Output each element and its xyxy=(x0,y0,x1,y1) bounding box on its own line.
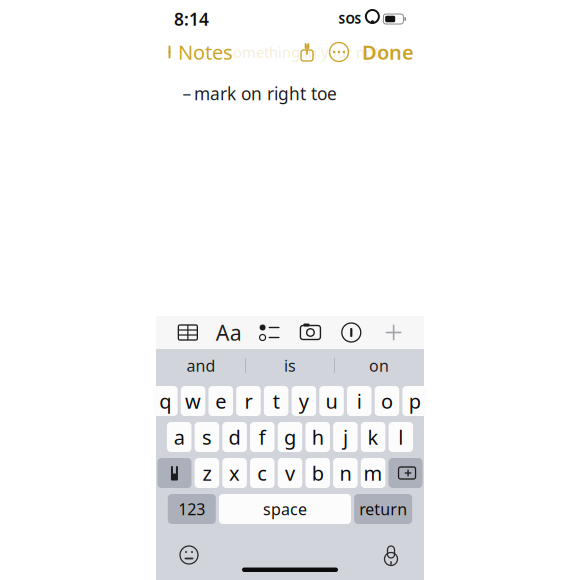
button[interactable]: k xyxy=(361,422,385,452)
staticText: d xyxy=(229,424,241,450)
staticText: n xyxy=(339,460,351,486)
staticText: f xyxy=(259,424,266,450)
button[interactable]: 123 xyxy=(168,494,216,524)
button[interactable]: a xyxy=(167,422,191,452)
staticText: x xyxy=(229,460,240,486)
button[interactable]: Share xyxy=(292,38,322,66)
button[interactable]: p xyxy=(402,386,427,416)
staticText: m xyxy=(364,460,383,486)
staticText: a xyxy=(174,424,185,450)
button[interactable]: u xyxy=(319,386,344,416)
button[interactable]: v xyxy=(278,458,302,488)
button[interactable]: c xyxy=(250,458,275,488)
staticText: q xyxy=(159,388,171,414)
staticText: u xyxy=(325,388,337,414)
button[interactable]: z xyxy=(195,458,219,488)
button[interactable]: Checklist xyxy=(253,317,287,347)
button[interactable]: e xyxy=(208,386,233,416)
button[interactable]: w xyxy=(181,386,205,416)
staticText: space xyxy=(263,498,307,520)
button[interactable]: j xyxy=(333,422,358,452)
staticText: k xyxy=(368,424,379,450)
staticText: mark on right toe xyxy=(194,82,337,105)
staticText: p xyxy=(409,388,421,414)
button[interactable]: f xyxy=(250,422,274,452)
button[interactable]: Markup xyxy=(334,317,368,347)
button[interactable]: Format xyxy=(212,317,246,347)
staticText: j xyxy=(343,424,348,450)
staticText: Done xyxy=(362,39,414,65)
button[interactable]: g xyxy=(278,422,302,452)
staticText: return xyxy=(359,498,407,520)
button[interactable]: d xyxy=(222,422,247,452)
staticText: s xyxy=(202,424,212,450)
button[interactable]: Done xyxy=(356,33,414,71)
staticText: Notes xyxy=(178,39,233,65)
button[interactable]: More xyxy=(322,38,356,66)
staticText: SOS xyxy=(338,11,361,27)
button[interactable]: o xyxy=(375,386,399,416)
staticText: i xyxy=(357,388,362,414)
button[interactable]: q xyxy=(153,386,178,416)
staticText: e xyxy=(215,388,226,414)
button[interactable]: space xyxy=(219,494,351,524)
button[interactable]: is xyxy=(246,349,334,382)
staticText: t xyxy=(273,388,280,414)
staticText: Aa xyxy=(216,318,242,347)
staticText: on xyxy=(369,355,389,376)
button[interactable]: on xyxy=(335,349,423,382)
button[interactable]: i xyxy=(347,386,371,416)
button[interactable]: m xyxy=(361,458,385,488)
button[interactable]: Table xyxy=(171,317,205,347)
staticText: o xyxy=(381,388,393,414)
staticText: b xyxy=(312,460,324,486)
button[interactable]: r xyxy=(236,386,261,416)
staticText: z xyxy=(202,460,211,486)
staticText: c xyxy=(257,460,267,486)
staticText: 8:14 xyxy=(174,7,209,30)
button[interactable]: x xyxy=(222,458,247,488)
button[interactable]: Delete xyxy=(388,458,422,488)
staticText: r xyxy=(244,388,252,414)
button[interactable]: l xyxy=(388,422,413,452)
staticText: – xyxy=(182,82,191,105)
staticText: v xyxy=(285,460,295,486)
button[interactable]: h xyxy=(305,422,330,452)
staticText: is xyxy=(284,355,296,376)
staticText: something in your note xyxy=(226,42,387,62)
staticText: 123 xyxy=(178,498,205,520)
button[interactable]: n xyxy=(333,458,358,488)
staticText: y xyxy=(299,388,309,414)
button[interactable]: return xyxy=(354,494,412,524)
staticText: g xyxy=(284,424,296,450)
staticText: l xyxy=(398,424,403,450)
staticText: w xyxy=(185,388,201,414)
button[interactable]: t xyxy=(264,386,288,416)
button[interactable]: b xyxy=(305,458,330,488)
button[interactable]: s xyxy=(195,422,219,452)
button[interactable]: Camera xyxy=(293,317,327,347)
button[interactable]: Shift xyxy=(157,458,191,488)
staticText: and xyxy=(186,355,215,376)
button[interactable]: Notes xyxy=(166,33,239,71)
button[interactable]: Close keyboard xyxy=(375,317,409,347)
button[interactable]: and xyxy=(157,349,245,382)
staticText: h xyxy=(312,424,324,450)
button[interactable]: Emoji xyxy=(172,541,206,569)
button[interactable]: y xyxy=(292,386,316,416)
button[interactable]: Dictation xyxy=(374,541,408,569)
